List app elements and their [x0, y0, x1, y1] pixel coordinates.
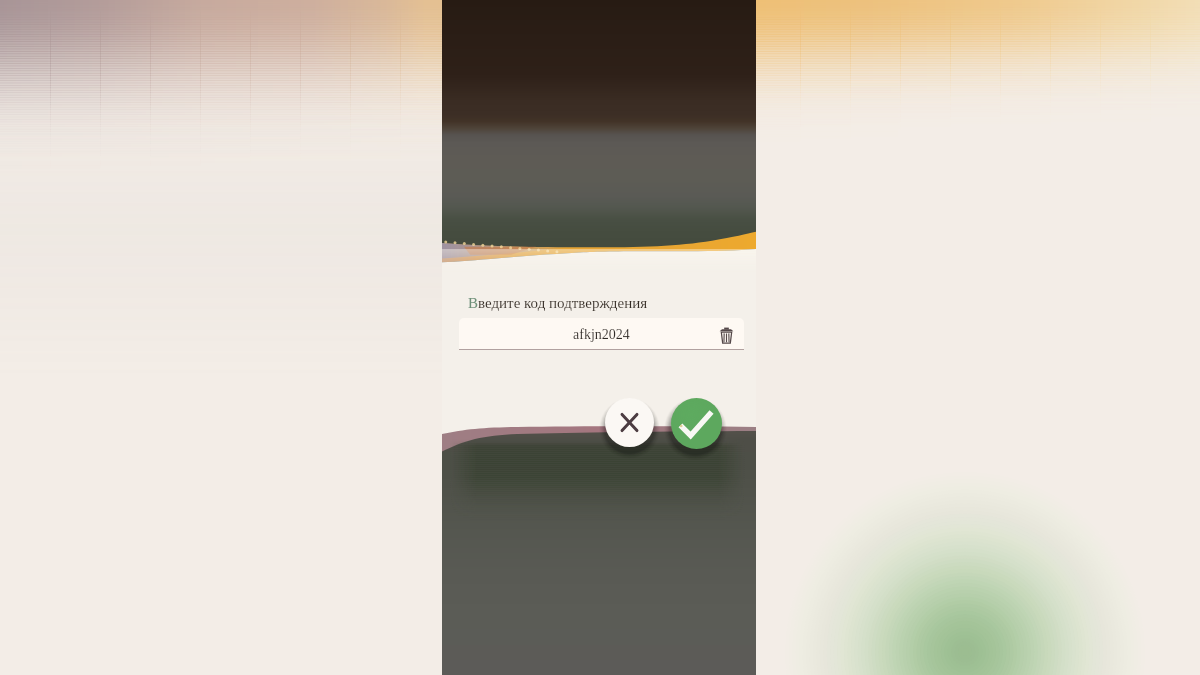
button[interactable]: Cancel [605, 398, 654, 447]
button[interactable]: Confirm [671, 398, 722, 449]
staticText: Введите код подтверждения [468, 295, 648, 312]
button[interactable]: afkjn2024 [459, 318, 744, 350]
staticText: afkjn2024 [573, 327, 630, 343]
button[interactable]: Clear [715, 323, 737, 347]
